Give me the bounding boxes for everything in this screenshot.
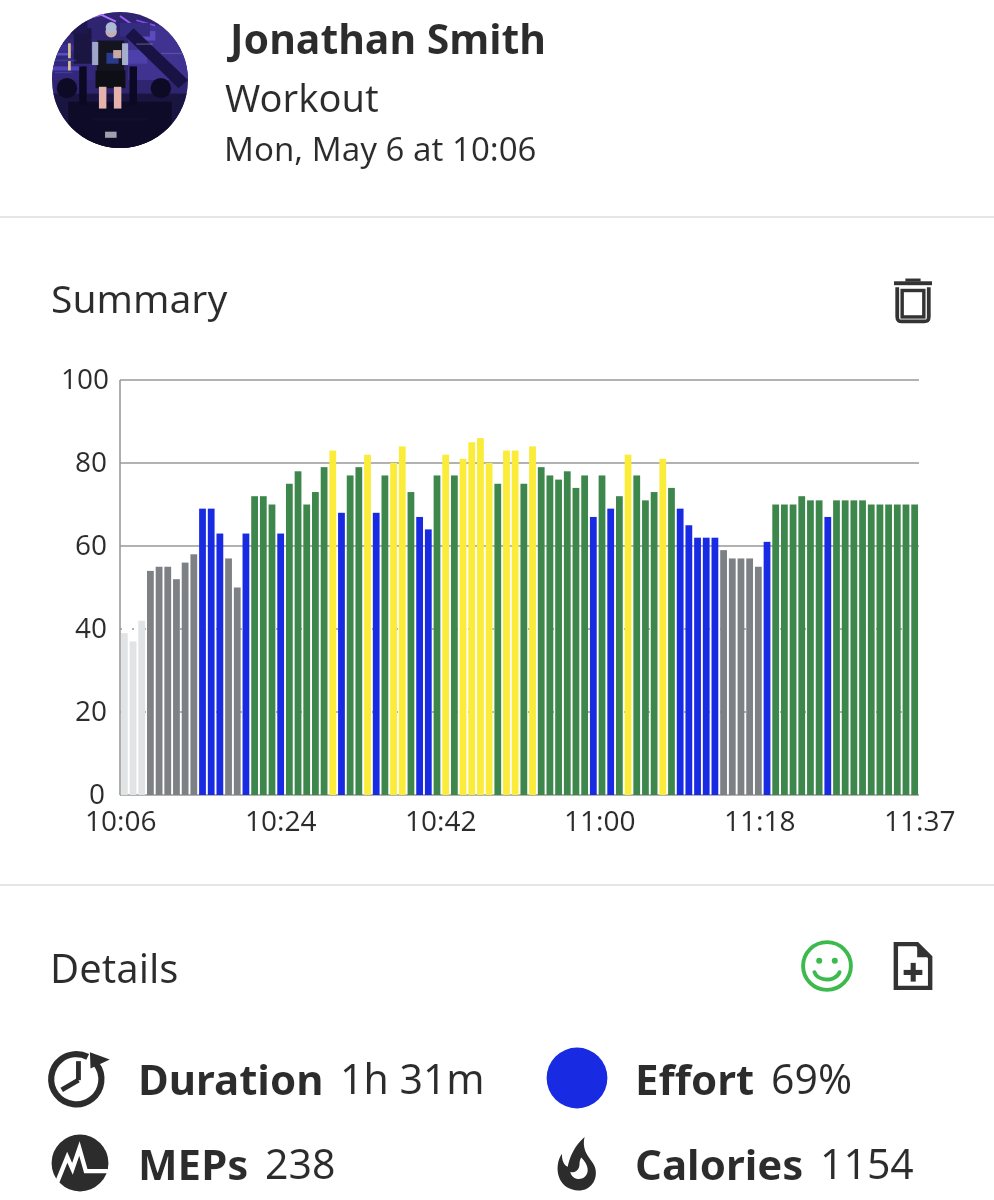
staticText: Jonathan Smith	[230, 10, 546, 66]
staticText: Mon, May 6 at 10:06	[224, 126, 537, 171]
staticText: Effort	[635, 1050, 755, 1107]
button[interactable]: MEPs	[48, 1131, 336, 1195]
button[interactable]: Effort	[545, 1046, 852, 1110]
staticText: Summary	[51, 271, 228, 324]
staticText: MEPs	[138, 1135, 249, 1192]
staticText: 40	[75, 608, 108, 646]
button[interactable]: Profile photo	[0, 0, 994, 216]
staticText: 10:24	[245, 801, 317, 839]
staticText: Details	[50, 940, 179, 994]
button[interactable]: Calories	[545, 1131, 914, 1195]
staticText: 10:42	[405, 801, 477, 839]
staticText: 10:06	[85, 801, 157, 839]
button[interactable]: Duration	[48, 1046, 485, 1110]
button[interactable]: Feeling	[796, 935, 858, 997]
staticText: Workout	[225, 71, 379, 123]
staticText: 1h 31m	[340, 1050, 485, 1106]
staticText: 60	[75, 525, 108, 563]
staticText: 69%	[771, 1050, 852, 1106]
staticText: Duration	[138, 1050, 324, 1107]
staticText: 11:18	[724, 801, 796, 839]
staticText: 1154	[820, 1135, 914, 1191]
staticText: 20	[75, 691, 108, 729]
staticText: 0	[89, 774, 106, 812]
button[interactable]: Profile photo	[52, 12, 188, 148]
staticText: 80	[75, 442, 108, 480]
staticText: Calories	[635, 1135, 804, 1192]
staticText: 100	[61, 359, 110, 397]
button[interactable]: Add note	[882, 935, 944, 997]
staticText: 238	[265, 1135, 336, 1191]
staticText: 11:00	[564, 801, 636, 839]
button[interactable]: Delete	[882, 268, 944, 330]
staticText: 11:37	[884, 801, 956, 839]
